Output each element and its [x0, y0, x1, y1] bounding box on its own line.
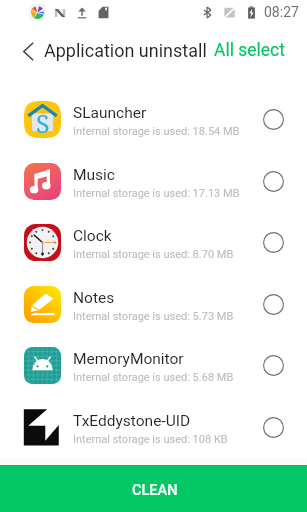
- staticText: SLauncher: [73, 104, 147, 122]
- button[interactable]: Select SLauncher: [251, 97, 295, 141]
- button[interactable]: MemoryMonitor: [0, 334, 307, 396]
- staticText: 08:27: [264, 4, 299, 20]
- staticText: Internal storage is used: 5.68 MB: [73, 371, 234, 384]
- button[interactable]: Music: [0, 150, 307, 212]
- button[interactable]: All select: [192, 30, 307, 71]
- staticText: Internal storage is used: 5.73 MB: [73, 310, 234, 323]
- staticText: S: [36, 106, 50, 140]
- staticText: Notes: [73, 289, 115, 307]
- staticText: All select: [214, 40, 285, 61]
- staticText: Music: [73, 166, 115, 184]
- staticText: Internal storage is used: 108 KB: [73, 433, 228, 446]
- button[interactable]: Notes: [0, 273, 307, 335]
- button[interactable]: Back: [8, 31, 48, 71]
- button[interactable]: Select MemoryMonitor: [251, 343, 295, 387]
- button[interactable]: S: [0, 88, 307, 150]
- button[interactable]: Select TxEddystone-UID: [251, 405, 295, 449]
- staticText: CLEAN: [132, 482, 178, 499]
- button[interactable]: Select Clock: [251, 220, 295, 264]
- staticText: Internal storage is used: 18.54 MB: [73, 125, 240, 138]
- staticText: TxEddystone-UID: [73, 412, 191, 430]
- button[interactable]: CLEAN: [0, 465, 307, 512]
- button[interactable]: Select Notes: [251, 282, 295, 326]
- staticText: Internal storage is used: 8.70 MB: [73, 248, 234, 261]
- staticText: MemoryMonitor: [73, 350, 184, 368]
- staticText: Clock: [73, 227, 112, 245]
- staticText: Application uninstall: [44, 40, 207, 61]
- button[interactable]: Select Music: [251, 159, 295, 203]
- staticText: Internal storage is used: 17.13 MB: [73, 187, 240, 200]
- button[interactable]: TxEddystone-UID: [0, 396, 307, 458]
- button[interactable]: Clock: [0, 211, 307, 273]
